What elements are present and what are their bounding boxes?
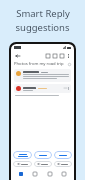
button[interactable]: Smart reply suggestion <box>13 151 32 159</box>
staticText: Smart Reply <box>16 7 70 20</box>
button[interactable] <box>14 84 71 93</box>
button[interactable]: Forward <box>54 161 72 167</box>
button[interactable]: Mark unread <box>58 52 65 59</box>
button[interactable]: Mail <box>15 169 27 178</box>
button[interactable]: Reply <box>13 161 32 167</box>
button[interactable]: Delete <box>51 52 58 59</box>
button[interactable]: Meet <box>58 169 70 178</box>
button[interactable]: Spaces <box>44 169 56 178</box>
staticText: Photos from my road trip <box>14 61 68 67</box>
button[interactable]: Smart reply suggestion <box>54 151 72 159</box>
button[interactable]: Smart reply suggestion <box>34 151 52 159</box>
button[interactable] <box>14 69 71 82</box>
staticText: suggestions <box>15 21 70 34</box>
button[interactable]: Back <box>14 52 21 59</box>
button[interactable]: Reply all <box>34 161 52 167</box>
button[interactable]: More options <box>65 53 71 59</box>
button[interactable]: Archive <box>44 52 51 59</box>
button[interactable]: Chat <box>29 169 41 178</box>
